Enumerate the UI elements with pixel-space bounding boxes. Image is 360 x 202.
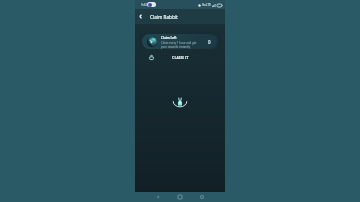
staticText: VoLTE: [202, 3, 211, 7]
staticText: 0: [208, 39, 211, 45]
staticText: Claim Rabbit: [150, 14, 178, 20]
button[interactable]: Home: [173, 192, 187, 202]
button[interactable]: Back: [151, 192, 165, 202]
staticText: Claim every 1 hour and get your rewards …: [161, 41, 197, 48]
button[interactable]: Back: [135, 9, 146, 24]
button[interactable]: Recent apps: [195, 192, 209, 202]
button[interactable]: Claim Left: [139, 31, 221, 64]
staticText: CLAIM IT: [172, 55, 189, 60]
staticText: Claim Left: [161, 36, 177, 40]
button[interactable]: CLAIM IT: [139, 49, 221, 64]
staticText: 9:44: [141, 3, 147, 7]
